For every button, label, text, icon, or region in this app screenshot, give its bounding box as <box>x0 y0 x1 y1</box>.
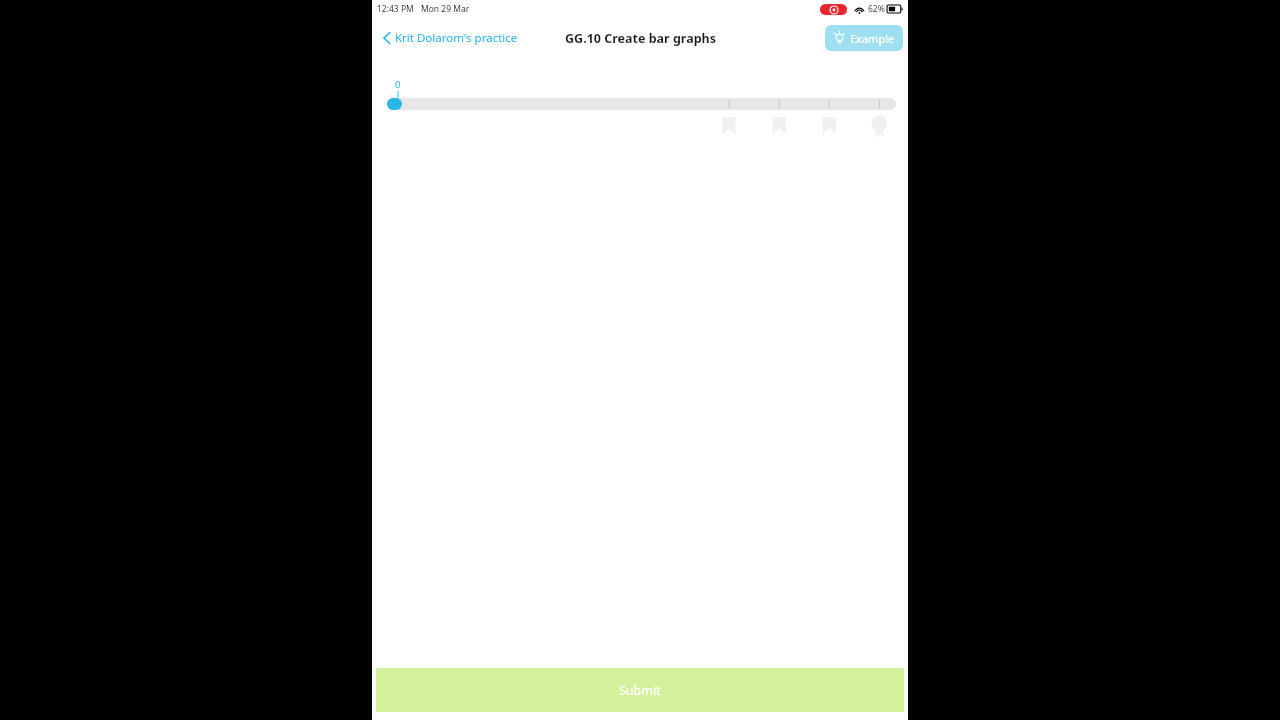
staticText: Krit Dolarom's practice <box>395 30 518 46</box>
button[interactable]: Example <box>825 25 903 51</box>
button[interactable]: Submit <box>376 668 904 712</box>
staticText: GG.10 Create bar graphs <box>565 30 716 47</box>
staticText: 62% <box>868 3 885 15</box>
staticText: Example <box>850 31 895 46</box>
staticText: Mon 29 Mar <box>421 3 470 15</box>
staticText: 12:43 PM <box>377 3 414 15</box>
staticText: 0 <box>395 78 401 91</box>
button[interactable]: Krit Dolarom's practice <box>380 26 521 50</box>
staticText: Submit <box>619 682 661 699</box>
